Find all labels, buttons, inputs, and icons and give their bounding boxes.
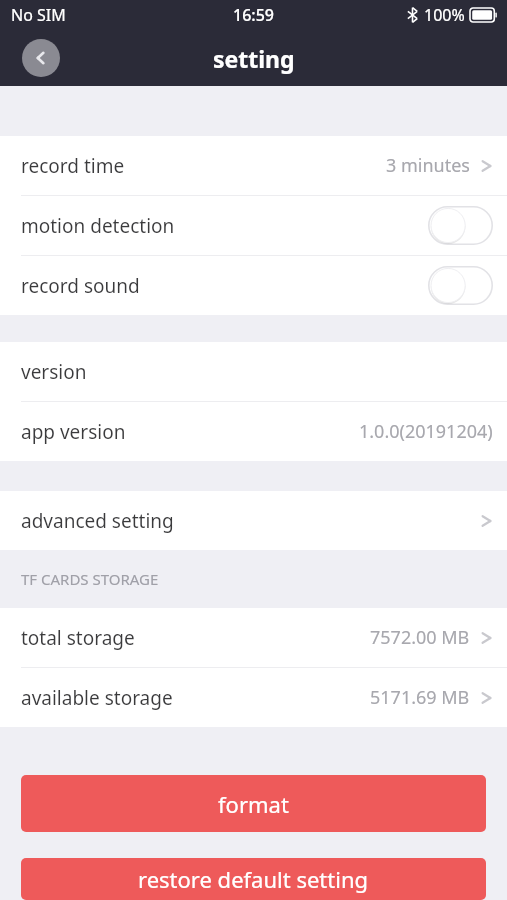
button[interactable]: Back: [22, 39, 60, 77]
button[interactable]: Toggle: [428, 266, 493, 305]
staticText: record time: [21, 153, 125, 179]
staticText: setting: [213, 43, 295, 74]
staticText: 3 minutes: [386, 153, 470, 178]
button[interactable]: advanced setting: [0, 491, 507, 550]
staticText: app version: [21, 419, 126, 445]
button[interactable]: record time: [0, 136, 507, 195]
staticText: motion detection: [21, 213, 175, 239]
staticText: 16:59: [233, 4, 274, 26]
staticText: 1.0.0(20191204): [359, 419, 493, 444]
button[interactable]: total storage: [0, 608, 507, 667]
staticText: advanced setting: [21, 508, 174, 534]
button[interactable]: Toggle: [428, 206, 493, 245]
staticText: record sound: [21, 273, 140, 299]
staticText: TF CARDS STORAGE: [21, 569, 159, 589]
staticText: available storage: [21, 685, 173, 711]
staticText: No SIM: [11, 4, 66, 26]
button[interactable]: restore default setting: [21, 858, 486, 900]
staticText: 5171.69 MB: [370, 685, 470, 710]
staticText: 100%: [424, 4, 465, 26]
button[interactable]: version: [0, 342, 507, 401]
staticText: total storage: [21, 625, 135, 651]
staticText: 7572.00 MB: [370, 625, 470, 650]
staticText: version: [21, 359, 87, 385]
button[interactable]: format: [21, 775, 486, 832]
button[interactable]: app version: [0, 402, 507, 461]
button[interactable]: available storage: [0, 668, 507, 727]
button[interactable]: motion detection: [0, 196, 507, 255]
staticText: format: [218, 789, 289, 819]
button[interactable]: record sound: [0, 256, 507, 315]
staticText: restore default setting: [138, 864, 369, 894]
